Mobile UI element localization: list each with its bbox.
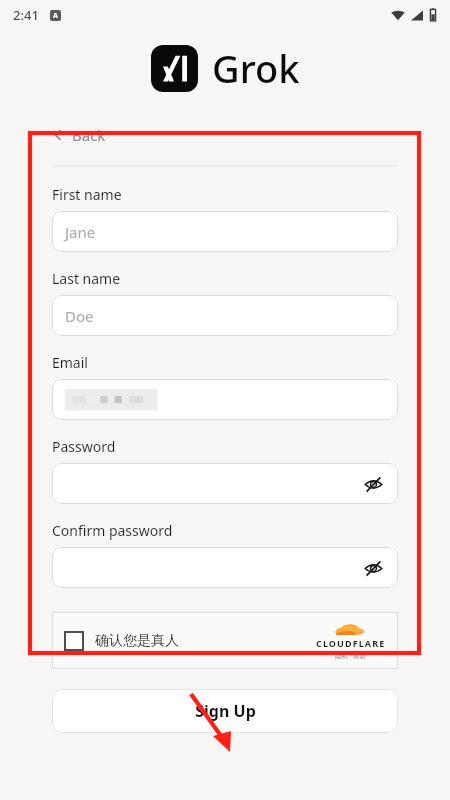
button[interactable]: Toggle password visibility bbox=[52, 547, 398, 588]
button[interactable]: Verify you are human checkbox bbox=[64, 631, 84, 651]
staticText: Sign Up bbox=[195, 700, 256, 722]
staticText: CLOUDFLARE bbox=[316, 637, 386, 649]
staticText: A bbox=[53, 11, 58, 21]
staticText: Confirm password bbox=[52, 521, 173, 540]
button[interactable]: Back bbox=[52, 121, 106, 149]
staticText: 确认您是真人 bbox=[95, 632, 179, 650]
button[interactable]: Jane bbox=[52, 211, 398, 252]
button[interactable]: Toggle password visibility bbox=[361, 556, 385, 580]
button[interactable]: Toggle password visibility bbox=[52, 463, 398, 504]
staticText: Email bbox=[52, 353, 88, 372]
staticText: Password bbox=[52, 437, 116, 456]
staticText: Back bbox=[72, 125, 106, 145]
staticText: Last name bbox=[52, 269, 121, 288]
button[interactable]: Sign Up bbox=[52, 689, 398, 733]
staticText: Grok bbox=[212, 42, 300, 94]
staticText: Doe bbox=[65, 306, 94, 326]
button[interactable]: Doe bbox=[52, 295, 398, 336]
staticText: Jane bbox=[65, 222, 96, 242]
button[interactable] bbox=[52, 379, 398, 420]
button[interactable]: Toggle password visibility bbox=[361, 472, 385, 496]
staticText: 隐私 · 条款 bbox=[335, 651, 367, 660]
button[interactable]: Verify you are human checkbox bbox=[52, 612, 398, 669]
staticText: 2:41 bbox=[13, 6, 39, 24]
staticText: First name bbox=[52, 185, 122, 204]
